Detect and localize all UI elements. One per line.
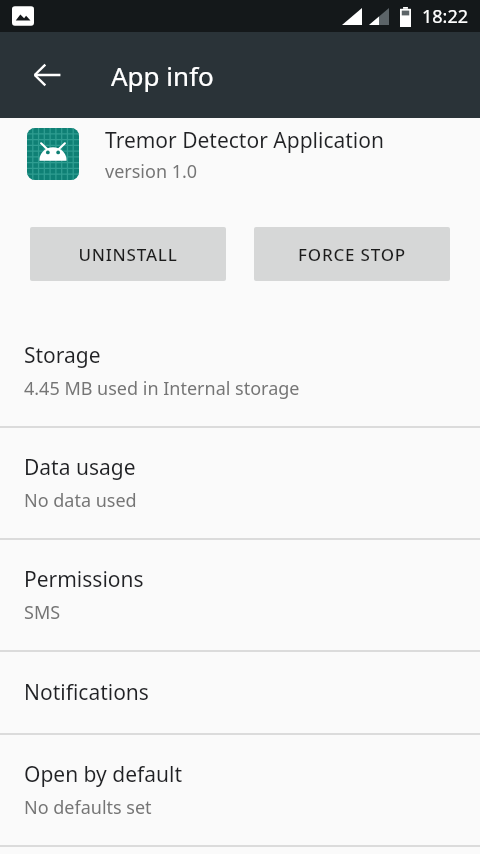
staticText: Data usage <box>24 453 136 482</box>
button[interactable]: Open by default <box>0 735 480 845</box>
staticText: No defaults set <box>24 795 152 820</box>
staticText: version 1.0 <box>105 159 198 184</box>
staticText: FORCE STOP <box>298 243 406 266</box>
staticText: 18:22 <box>422 4 469 29</box>
staticText: Permissions <box>24 565 144 594</box>
staticText: No data used <box>24 488 137 513</box>
staticText: Open by default <box>24 760 183 789</box>
staticText: Tremor Detector Application <box>105 126 384 155</box>
button[interactable]: Storage <box>0 316 480 426</box>
button[interactable]: Notifications <box>0 652 480 733</box>
button[interactable]: Back <box>19 47 75 103</box>
staticText: Storage <box>24 341 101 370</box>
button[interactable]: UNINSTALL <box>30 227 226 281</box>
button[interactable]: Permissions <box>0 540 480 650</box>
staticText: Notifications <box>24 678 149 707</box>
staticText: App info <box>111 58 214 93</box>
button[interactable]: Data usage <box>0 428 480 538</box>
button[interactable]: Tremor Detector Application <box>0 118 480 200</box>
staticText: UNINSTALL <box>78 243 178 266</box>
staticText: SMS <box>24 600 61 625</box>
button[interactable]: FORCE STOP <box>254 227 450 281</box>
staticText: 4.45 MB used in Internal storage <box>24 376 300 401</box>
